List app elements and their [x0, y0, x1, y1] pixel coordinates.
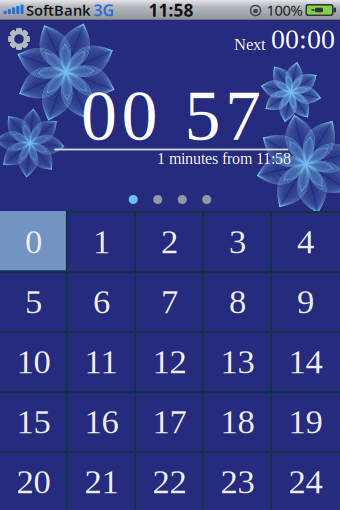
button[interactable]: 4 — [273, 213, 338, 270]
button[interactable]: 11 — [69, 333, 134, 390]
button[interactable]: 17 — [137, 393, 202, 450]
staticText: 3G — [93, 0, 114, 21]
staticText: 12 — [152, 342, 186, 381]
staticText: 0 — [25, 222, 42, 261]
staticText: 4 — [297, 222, 314, 261]
staticText: 17 — [152, 402, 186, 441]
staticText: 13 — [220, 342, 254, 381]
staticText: SoftBank — [26, 0, 91, 20]
staticText: 2 — [161, 222, 178, 261]
staticText: 8 — [229, 282, 246, 321]
button[interactable]: 7 — [137, 273, 202, 330]
staticText: 22 — [152, 462, 186, 501]
button[interactable] — [6, 26, 32, 52]
staticText: 10 — [16, 342, 50, 381]
staticText: 20 — [16, 462, 50, 501]
staticText: 15 — [16, 402, 50, 441]
button[interactable]: 15 — [1, 393, 66, 450]
staticText: 14 — [288, 342, 322, 381]
button[interactable]: 22 — [137, 453, 202, 510]
staticText: 11:58 — [148, 0, 193, 21]
button[interactable]: 18 — [205, 393, 270, 450]
staticText: 100% — [266, 0, 302, 20]
button[interactable]: 1 — [69, 213, 134, 270]
staticText: 3 — [229, 222, 246, 261]
button[interactable]: 13 — [205, 333, 270, 390]
button[interactable]: 12 — [137, 333, 202, 390]
button[interactable]: 5 — [1, 273, 66, 330]
button[interactable]: 3 — [205, 213, 270, 270]
staticText: 16 — [84, 402, 118, 441]
button[interactable]: 0 — [1, 213, 66, 270]
button[interactable]: 8 — [205, 273, 270, 330]
staticText: 7 — [161, 282, 178, 321]
button[interactable]: 14 — [273, 333, 338, 390]
button[interactable]: 19 — [273, 393, 338, 450]
button[interactable]: 10 — [1, 333, 66, 390]
staticText: 00:00 — [271, 23, 335, 54]
button[interactable]: 24 — [273, 453, 338, 510]
button[interactable]: 20 — [1, 453, 66, 510]
button[interactable]: 21 — [69, 453, 134, 510]
staticText: 9 — [297, 282, 314, 321]
staticText: 23 — [220, 462, 254, 501]
staticText: 1 — [93, 222, 110, 261]
staticText: 5 — [25, 282, 42, 321]
button[interactable] — [129, 195, 211, 204]
button[interactable]: 6 — [69, 273, 134, 330]
staticText: 18 — [220, 402, 254, 441]
button[interactable]: 2 — [137, 213, 202, 270]
staticText: 21 — [84, 462, 118, 501]
staticText: 19 — [288, 402, 322, 441]
staticText: Next — [234, 35, 266, 53]
staticText: 11 — [84, 342, 118, 381]
button[interactable]: 16 — [69, 393, 134, 450]
staticText: 00 57 — [81, 76, 261, 155]
staticText: 6 — [93, 282, 110, 321]
button[interactable]: 23 — [205, 453, 270, 510]
staticText: 24 — [288, 462, 322, 501]
button[interactable]: 9 — [273, 273, 338, 330]
staticText: 1 minutes from 11:58 — [157, 150, 291, 167]
